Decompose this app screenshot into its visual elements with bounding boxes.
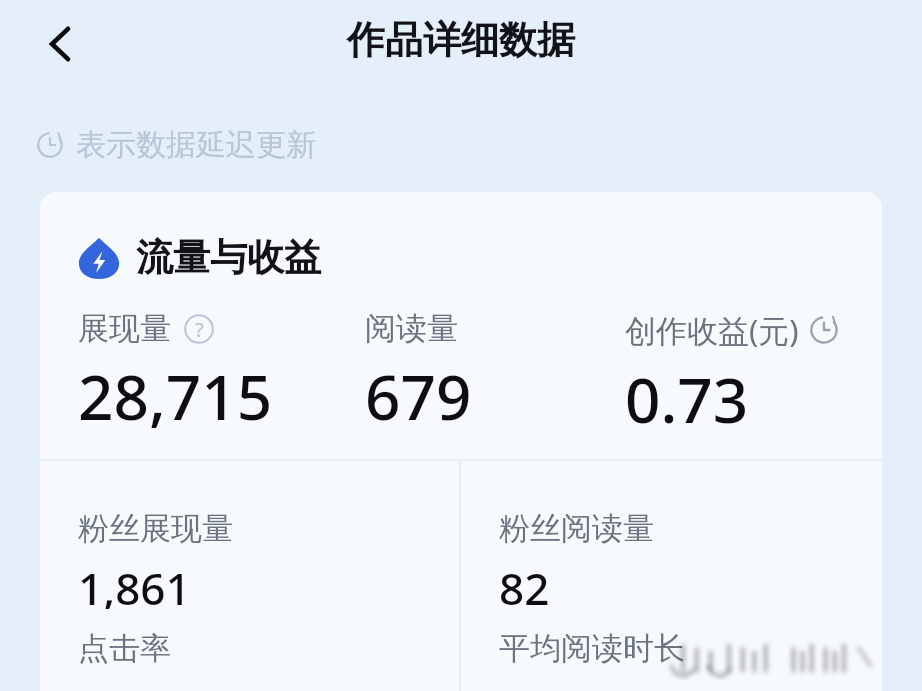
- staticText: 粉丝阅读量: [499, 509, 654, 548]
- staticText: 表示数据延迟更新: [76, 126, 316, 164]
- staticText: 展现量: [78, 309, 171, 348]
- staticText: 点击率: [78, 629, 171, 668]
- button[interactable]: 阅读量: [365, 309, 480, 438]
- button[interactable]: 展现量: [78, 309, 281, 438]
- staticText: 28,715: [78, 354, 273, 438]
- button[interactable]: Back: [24, 8, 96, 80]
- button[interactable]: 粉丝展现量: [40, 461, 459, 609]
- button[interactable]: 创作收益(元): [625, 309, 847, 441]
- button[interactable]: Help: [183, 313, 215, 345]
- staticText: 阅读量: [365, 309, 458, 348]
- staticText: 82: [499, 558, 550, 609]
- staticText: 流量与收益: [136, 234, 321, 281]
- staticText: ?: [195, 316, 204, 343]
- staticText: 1,861: [78, 558, 191, 609]
- staticText: 平均阅读时长: [499, 629, 685, 668]
- staticText: 0.73: [625, 357, 749, 441]
- staticText: 粉丝展现量: [78, 509, 233, 548]
- staticText: 作品详细数据: [347, 16, 575, 64]
- button[interactable]: 粉丝阅读量: [461, 461, 882, 609]
- staticText: 创作收益(元): [625, 309, 799, 351]
- staticText: 679: [365, 354, 472, 438]
